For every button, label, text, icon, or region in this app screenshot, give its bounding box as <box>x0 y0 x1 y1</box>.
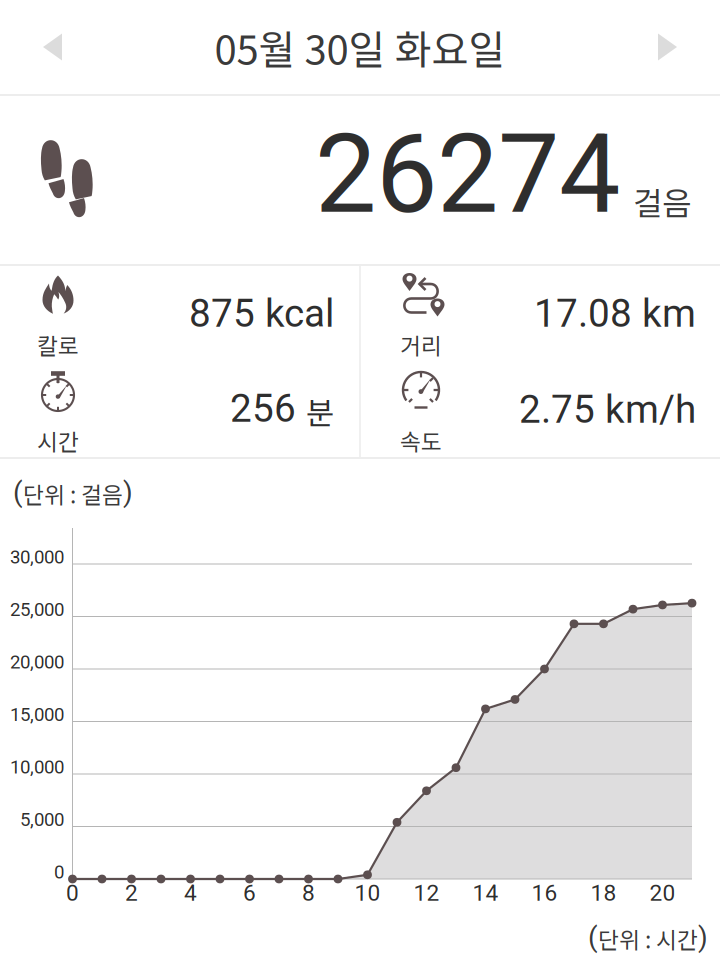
staticText: 속도 <box>400 424 442 457</box>
button[interactable]: Previous day <box>0 11 86 82</box>
button[interactable]: Next day <box>634 11 720 82</box>
staticText: 875 kcal <box>189 291 334 336</box>
staticText: 20,000 <box>10 651 64 673</box>
staticText: (단위 : 시간) <box>588 921 708 955</box>
staticText: 0 <box>66 880 79 906</box>
staticText: 12 <box>413 880 439 906</box>
staticText: 10 <box>354 880 380 906</box>
staticText: 26274 <box>315 110 620 238</box>
staticText: 17.08 km <box>534 291 696 336</box>
staticText: 16 <box>531 880 557 906</box>
staticText: 10,000 <box>10 756 64 778</box>
staticText: 15,000 <box>10 704 64 725</box>
staticText: 25,000 <box>10 599 64 620</box>
staticText: 걸음 <box>633 178 691 224</box>
staticText: 5,000 <box>20 809 64 830</box>
staticText: 8 <box>302 880 315 906</box>
staticText: 14 <box>472 880 498 906</box>
staticText: 거리 <box>400 328 442 361</box>
staticText: (단위 : 걸음) <box>13 476 133 510</box>
staticText: 칼로 <box>37 328 79 361</box>
staticText: 30,000 <box>10 546 64 568</box>
staticText: 6 <box>243 880 256 906</box>
staticText: 2 <box>125 880 138 906</box>
staticText: 18 <box>590 880 616 906</box>
staticText: 0 <box>54 861 64 883</box>
staticText: 05월 30일 화요일 <box>214 18 505 76</box>
staticText: 20 <box>649 880 675 906</box>
staticText: 시간 <box>37 424 79 457</box>
staticText: 4 <box>184 880 197 906</box>
staticText: 2.75 km/h <box>519 387 696 432</box>
staticText: 256 분 <box>230 386 334 432</box>
